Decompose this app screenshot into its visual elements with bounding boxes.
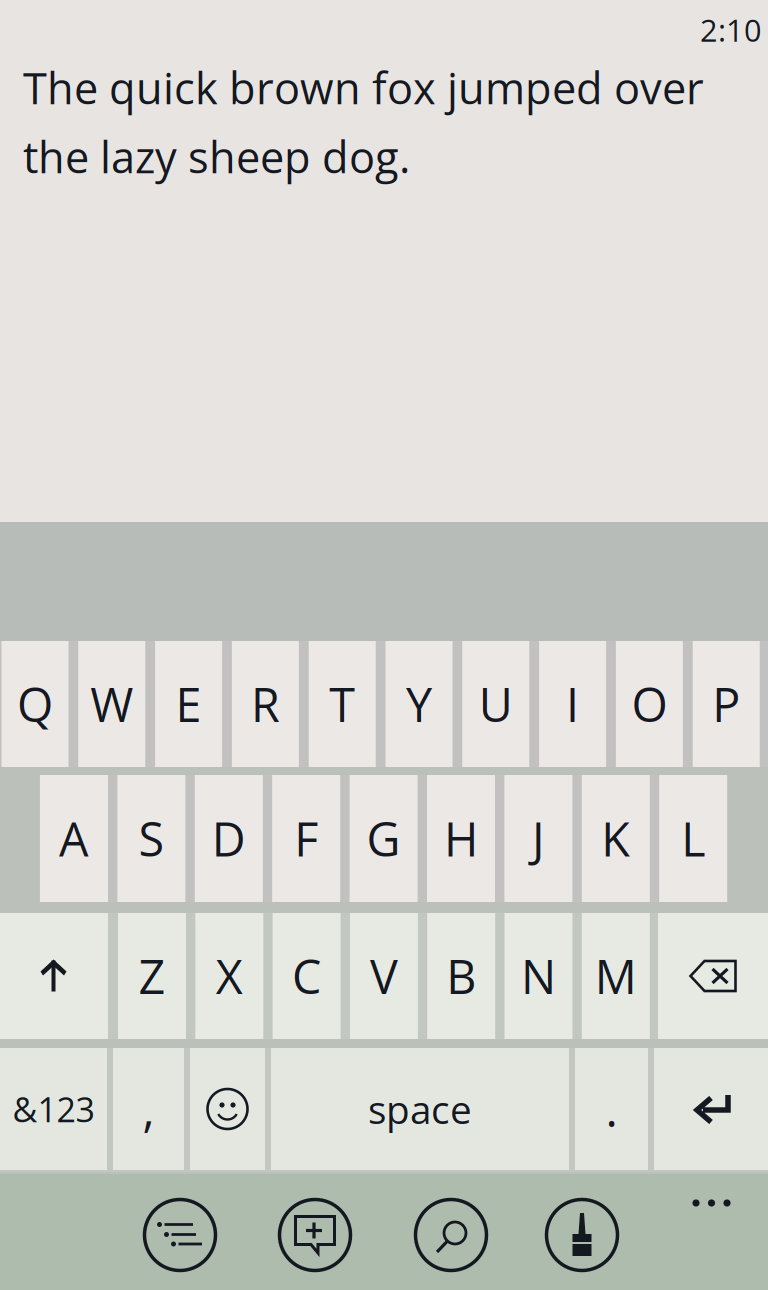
staticText: W [90, 672, 133, 736]
button[interactable]: Q [1, 641, 68, 767]
button[interactable]: Backspace [658, 913, 768, 1039]
button[interactable]: W [78, 641, 145, 767]
staticText: T [329, 672, 355, 736]
staticText: R [251, 672, 280, 736]
staticText: Y [406, 672, 432, 736]
button[interactable]: Search [407, 1191, 495, 1279]
button[interactable]: Bulleted list [136, 1191, 224, 1279]
button[interactable]: V [350, 913, 418, 1039]
staticText: P [712, 672, 740, 736]
staticText: L [681, 807, 705, 870]
button[interactable]: space [271, 1048, 569, 1170]
button[interactable]: X [195, 913, 263, 1039]
button[interactable]: J [504, 775, 572, 902]
button[interactable]: P [693, 641, 760, 767]
staticText: S [138, 807, 164, 870]
button[interactable]: L [659, 775, 727, 902]
button[interactable]: Y [385, 641, 452, 767]
button[interactable]: K [582, 775, 650, 902]
button[interactable]: Add note [271, 1191, 359, 1279]
staticText: J [532, 807, 545, 870]
staticText: X [216, 944, 243, 1008]
button[interactable]: , [113, 1048, 184, 1170]
button[interactable]: I [539, 641, 606, 767]
staticText: O [631, 672, 667, 736]
button[interactable]: T [309, 641, 376, 767]
staticText: F [294, 807, 318, 870]
button[interactable]: . [575, 1048, 648, 1170]
staticText: 2:10 [700, 9, 762, 51]
staticText: K [601, 807, 630, 870]
button[interactable]: E [155, 641, 222, 767]
button[interactable]: More options [673, 1180, 751, 1226]
button[interactable]: C [273, 913, 341, 1039]
button[interactable]: Z [118, 913, 186, 1039]
staticText: E [176, 672, 202, 736]
staticText: space [368, 1083, 472, 1135]
button[interactable]: B [427, 913, 495, 1039]
staticText: M [595, 944, 637, 1008]
button[interactable]: D [195, 775, 263, 902]
staticText: V [370, 944, 398, 1008]
button[interactable]: Shift [0, 913, 108, 1039]
button[interactable]: S [117, 775, 185, 902]
button[interactable]: &123 [0, 1048, 107, 1170]
staticText: , [142, 1077, 154, 1141]
button[interactable]: U [462, 641, 529, 767]
button[interactable]: A [40, 775, 108, 902]
staticText: the lazy sheep dog. [23, 127, 410, 186]
button[interactable]: O [616, 641, 683, 767]
staticText: A [59, 807, 89, 870]
staticText: D [212, 807, 246, 870]
staticText: Q [17, 672, 53, 736]
button[interactable]: M [582, 913, 650, 1039]
button[interactable]: Return [654, 1048, 768, 1170]
staticText: I [566, 672, 579, 736]
staticText: G [367, 807, 401, 870]
button[interactable]: N [504, 913, 572, 1039]
button[interactable]: F [272, 775, 340, 902]
staticText: H [444, 807, 478, 870]
button[interactable]: Formatting [538, 1191, 626, 1279]
staticText: B [446, 944, 476, 1008]
staticText: U [479, 672, 513, 736]
staticText: C [292, 944, 321, 1008]
staticText: &123 [12, 1086, 94, 1132]
staticText: The quick brown fox jumped over [23, 58, 704, 117]
button[interactable]: G [350, 775, 418, 902]
button[interactable]: Emoji [190, 1048, 265, 1170]
staticText: Z [138, 944, 165, 1008]
staticText: N [521, 944, 556, 1008]
button[interactable]: R [232, 641, 299, 767]
staticText: . [605, 1077, 617, 1141]
button[interactable]: H [427, 775, 495, 902]
